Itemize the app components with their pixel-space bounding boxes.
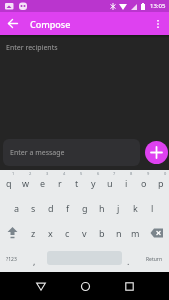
staticText: e (40, 177, 46, 189)
staticText: 6 (97, 171, 100, 176)
staticText: f (66, 202, 70, 214)
staticText: x (48, 227, 53, 239)
staticText: s (31, 202, 36, 214)
staticText: c (65, 227, 70, 239)
button[interactable]: w (17, 170, 34, 195)
staticText: 13:05 (150, 2, 166, 10)
staticText: 8 (130, 171, 133, 176)
button[interactable] (71, 272, 99, 300)
staticText: q (6, 177, 12, 189)
staticText: j (117, 202, 120, 214)
button[interactable]: p (152, 170, 169, 195)
staticText: 1 (12, 171, 15, 176)
staticText: l (151, 202, 154, 214)
button[interactable]: h (93, 195, 110, 220)
button[interactable]: c (59, 220, 76, 245)
staticText: 0 (164, 171, 167, 176)
button[interactable]: m (127, 220, 144, 245)
button[interactable]: g (76, 195, 93, 220)
button[interactable]: Return (141, 247, 167, 272)
button[interactable]: a (8, 195, 25, 220)
staticText: h (99, 202, 105, 214)
button[interactable]: k (127, 195, 144, 220)
button[interactable]: i (118, 170, 135, 195)
button[interactable]: v (76, 220, 93, 245)
button[interactable]: q (0, 170, 17, 195)
button[interactable] (145, 141, 168, 164)
staticText: p (158, 177, 164, 189)
staticText: r (58, 177, 62, 189)
button[interactable]: ?123 (0, 247, 22, 272)
button[interactable]: r (51, 170, 68, 195)
button[interactable]: n (110, 220, 127, 245)
button[interactable]: l (144, 195, 161, 220)
staticText: . (127, 255, 130, 267)
button[interactable]: e (34, 170, 51, 195)
staticText: v (82, 227, 87, 239)
staticText: ?123 (6, 256, 17, 263)
button[interactable]: t (68, 170, 85, 195)
button[interactable] (151, 17, 165, 31)
staticText: 5 (80, 171, 83, 176)
staticText: t (75, 177, 79, 189)
staticText: d (48, 202, 54, 214)
button[interactable]: j (110, 195, 127, 220)
staticText: Enter a message (10, 148, 65, 158)
button[interactable]: d (42, 195, 59, 220)
staticText: o (141, 177, 147, 189)
staticText: m (131, 227, 140, 239)
staticText: k (133, 202, 138, 214)
button[interactable]: s (25, 195, 42, 220)
button[interactable] (6, 17, 20, 31)
staticText: b (99, 227, 105, 239)
button[interactable] (0, 220, 25, 245)
button[interactable]: y (85, 170, 102, 195)
button[interactable]: Enter a message (3, 139, 140, 166)
button[interactable]: x (42, 220, 59, 245)
staticText: 4 (63, 171, 66, 176)
staticText: , (33, 255, 36, 267)
staticText: u (107, 177, 113, 189)
staticText: 3 (46, 171, 49, 176)
button[interactable] (27, 272, 55, 300)
button[interactable] (144, 220, 169, 245)
staticText: n (116, 227, 122, 239)
button[interactable]: f (59, 195, 76, 220)
staticText: z (31, 227, 36, 239)
staticText: 2 (29, 171, 32, 176)
staticText: 7 (113, 171, 116, 176)
staticText: g (82, 202, 88, 214)
staticText: 9 (147, 171, 150, 176)
button[interactable] (115, 272, 143, 300)
staticText: i (125, 177, 128, 189)
button[interactable]: z (25, 220, 42, 245)
staticText: a (14, 202, 20, 214)
staticText: w (22, 177, 30, 189)
button[interactable]: o (135, 170, 152, 195)
staticText: y (91, 177, 96, 189)
button[interactable]: b (93, 220, 110, 245)
staticText: Enter recipients (6, 43, 58, 53)
staticText: Return (146, 256, 162, 263)
staticText: Compose (30, 18, 71, 30)
button[interactable]: u (101, 170, 118, 195)
